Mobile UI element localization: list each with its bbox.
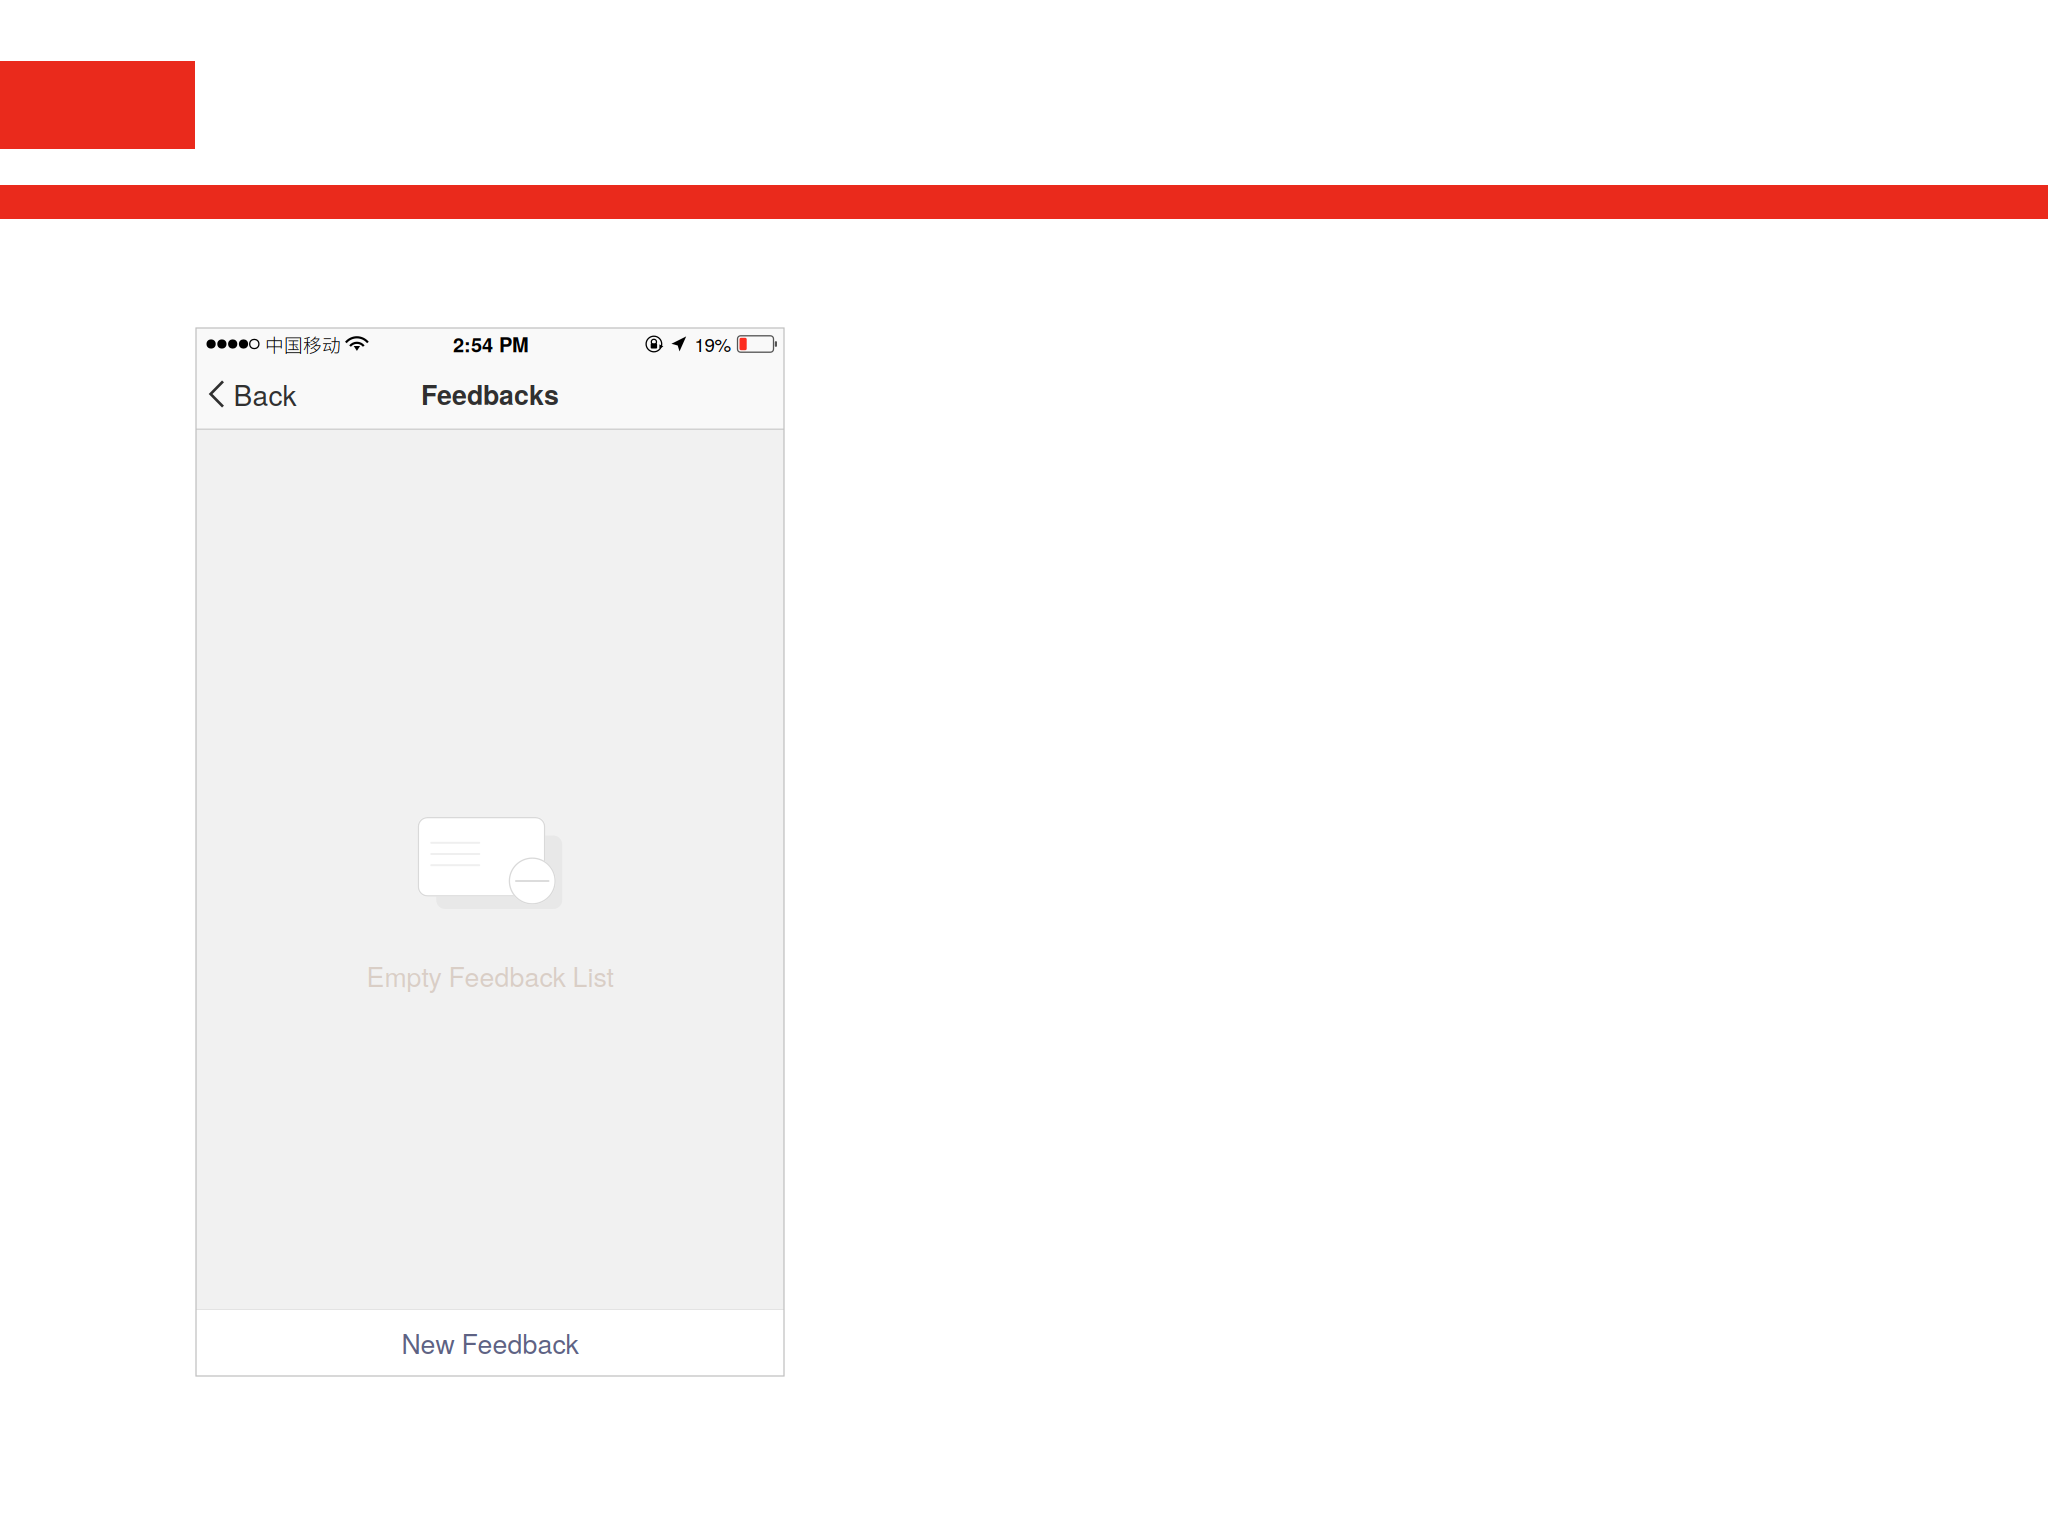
staticText: 中国移动 [265, 330, 341, 357]
staticText: New Feedback [401, 1323, 578, 1362]
staticText: Empty Feedback List [366, 956, 613, 995]
button[interactable]: Back [196, 361, 306, 427]
staticText: Feedbacks [421, 375, 559, 413]
button[interactable]: New Feedback [196, 1309, 784, 1376]
staticText: 2:54 PM [453, 330, 529, 358]
staticText: Back [233, 374, 296, 414]
staticText: 19% [694, 331, 731, 357]
